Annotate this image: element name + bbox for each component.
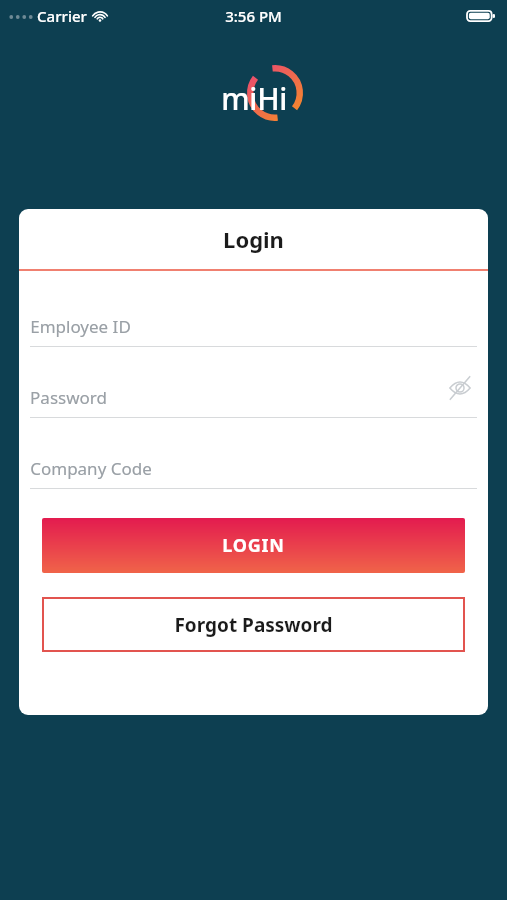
button[interactable]: Show password (443, 371, 477, 405)
staticText: 3:56 PM (225, 6, 282, 26)
staticText: Password (30, 386, 107, 409)
staticText: Employee ID (30, 315, 131, 338)
staticText: Login (223, 224, 284, 254)
staticText: Company Code (30, 457, 152, 480)
staticText: LOGIN (222, 533, 285, 558)
staticText: Forgot Password (174, 612, 333, 638)
button[interactable]: LOGIN (42, 518, 465, 573)
button[interactable]: Forgot Password (42, 597, 465, 652)
staticText: Carrier (37, 6, 87, 26)
staticText: Hi (257, 78, 287, 119)
staticText: mi (221, 78, 257, 119)
